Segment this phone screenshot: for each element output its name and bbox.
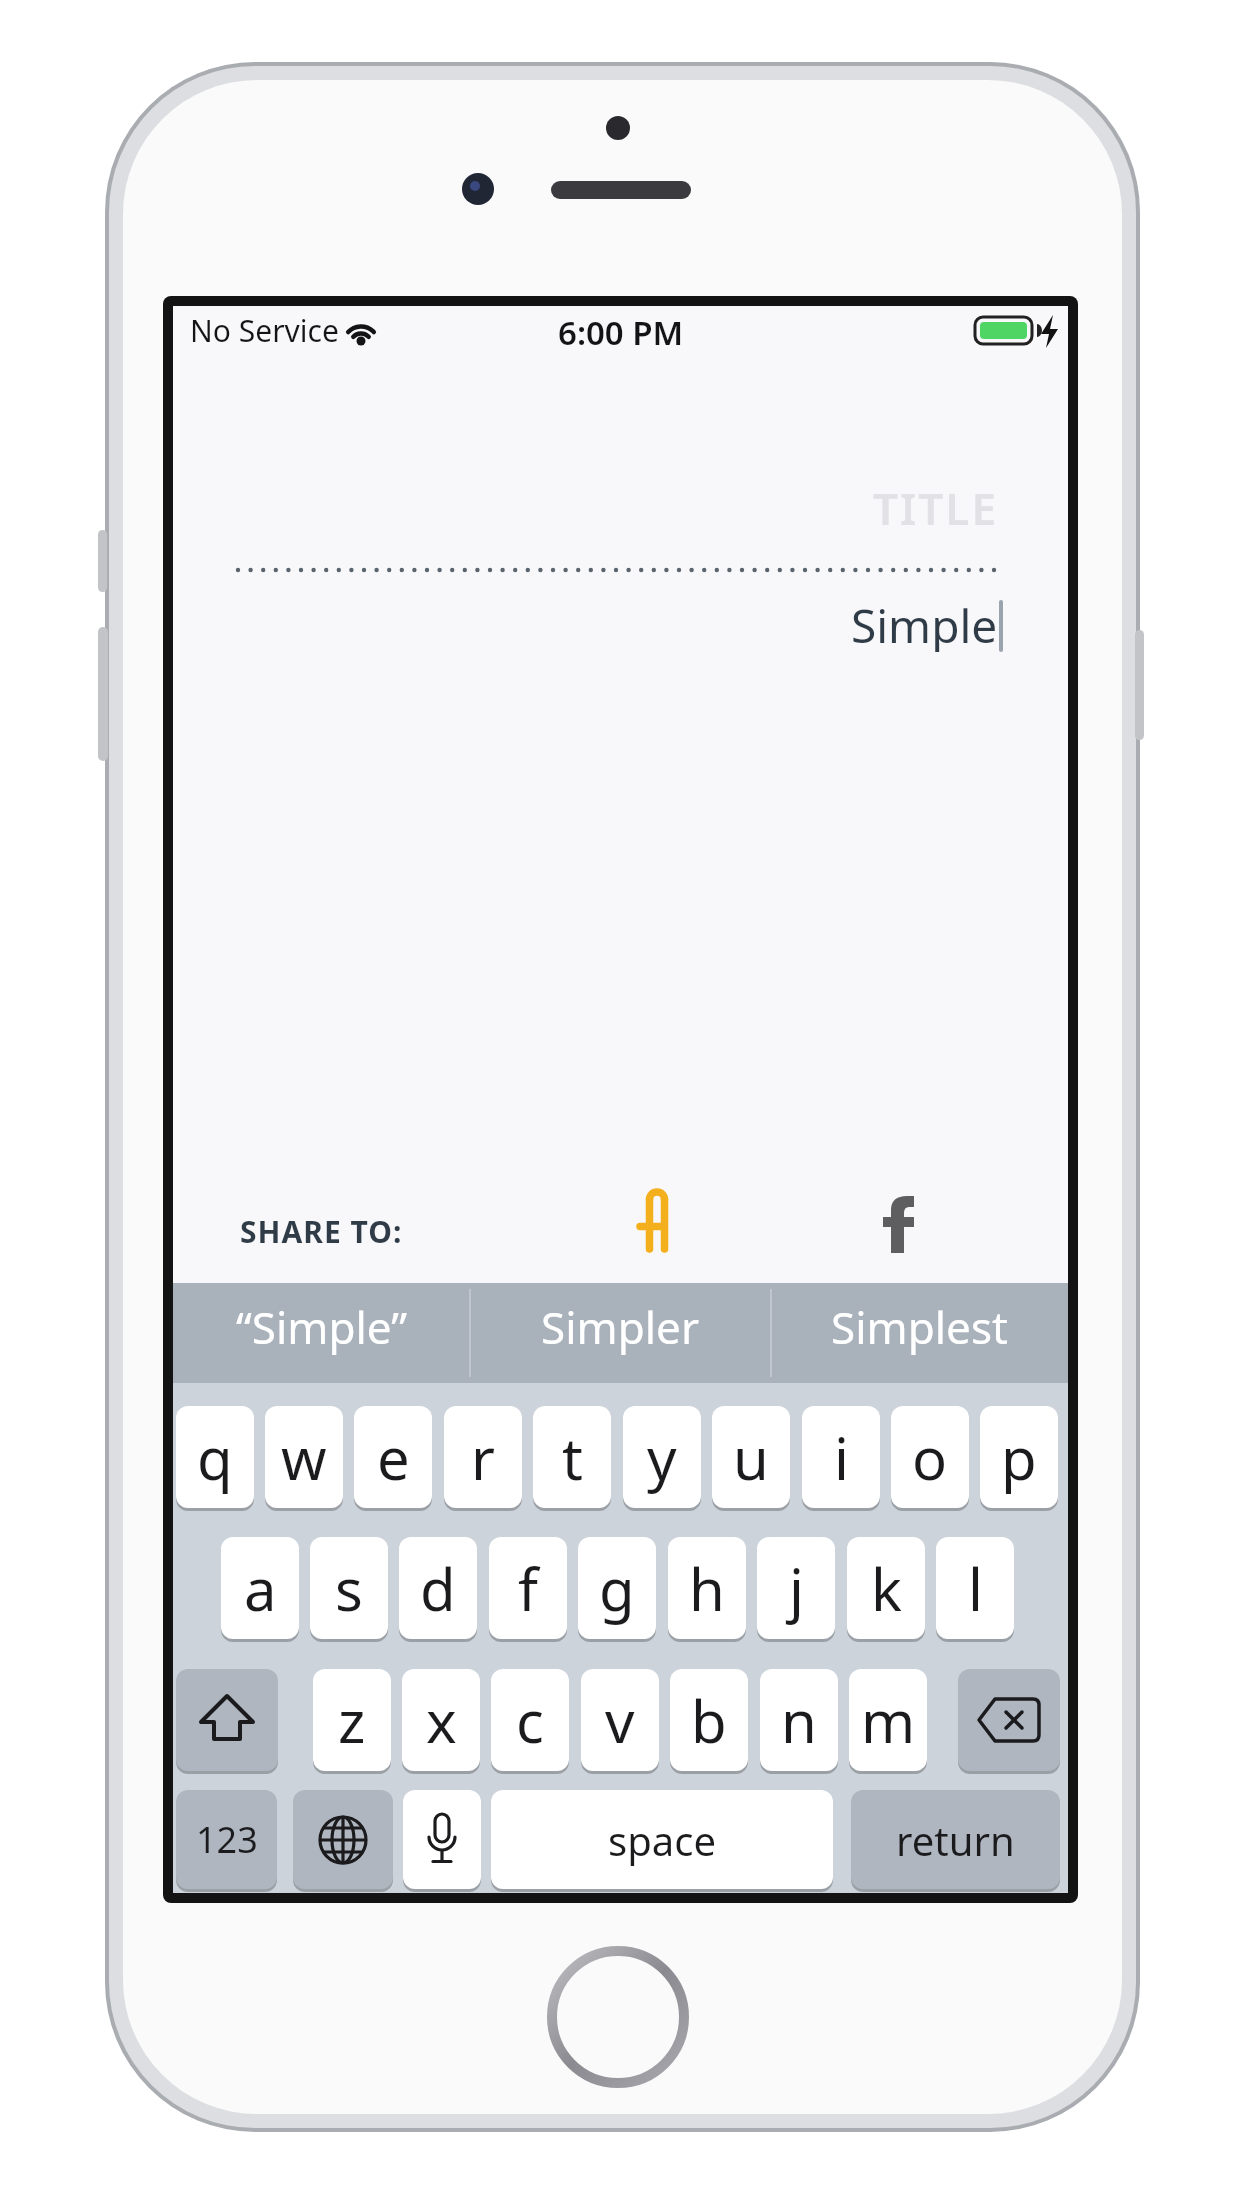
button[interactable]: m <box>849 1669 927 1771</box>
button[interactable]: k <box>847 1537 925 1639</box>
button[interactable]: e <box>354 1406 432 1508</box>
button[interactable]: 123 <box>176 1790 277 1889</box>
button[interactable] <box>176 1669 278 1771</box>
button[interactable]: p <box>980 1406 1058 1508</box>
button[interactable]: s <box>310 1537 388 1639</box>
button[interactable] <box>630 1182 690 1264</box>
staticText: p <box>1001 1418 1037 1497</box>
staticText: f <box>518 1549 538 1628</box>
staticText: d <box>420 1549 456 1628</box>
button[interactable]: o <box>891 1406 969 1508</box>
button[interactable]: b <box>670 1669 748 1771</box>
staticText: TITLE <box>873 478 998 532</box>
button[interactable]: l <box>936 1537 1014 1639</box>
button[interactable]: w <box>265 1406 343 1508</box>
staticText: Simple <box>851 594 998 652</box>
staticText: k <box>871 1549 902 1628</box>
button[interactable]: x <box>402 1669 480 1771</box>
staticText: z <box>338 1681 366 1760</box>
staticText: i <box>834 1418 849 1497</box>
button[interactable] <box>293 1790 393 1889</box>
staticText: q <box>197 1418 233 1497</box>
button[interactable]: y <box>623 1406 701 1508</box>
button[interactable]: j <box>757 1537 835 1639</box>
button[interactable]: h <box>668 1537 746 1639</box>
button[interactable]: q <box>176 1406 254 1508</box>
button[interactable]: a <box>221 1537 299 1639</box>
staticText: e <box>377 1418 410 1497</box>
button[interactable]: u <box>712 1406 790 1508</box>
button[interactable]: Simpler <box>470 1277 771 1377</box>
staticText: l <box>968 1549 983 1628</box>
staticText: 6:00 PM <box>558 310 684 350</box>
button[interactable]: c <box>491 1669 569 1771</box>
staticText: n <box>781 1681 817 1760</box>
staticText: “Simple” <box>236 1297 408 1357</box>
staticText: b <box>691 1681 727 1760</box>
staticText: y <box>647 1418 677 1497</box>
staticText: r <box>471 1418 495 1497</box>
staticText: a <box>244 1549 277 1628</box>
button[interactable]: f <box>489 1537 567 1639</box>
button[interactable]: t <box>533 1406 611 1508</box>
staticText: s <box>335 1549 363 1628</box>
button[interactable]: return <box>851 1790 1060 1889</box>
staticText: v <box>605 1681 635 1760</box>
button[interactable] <box>403 1790 481 1889</box>
staticText: 123 <box>196 1815 258 1864</box>
staticText: x <box>426 1681 457 1760</box>
button[interactable]: r <box>444 1406 522 1508</box>
button[interactable]: g <box>578 1537 656 1639</box>
button[interactable] <box>874 1186 922 1260</box>
button[interactable]: “Simple” <box>173 1277 470 1377</box>
staticText: o <box>912 1418 948 1497</box>
staticText: Simplest <box>831 1297 1008 1357</box>
staticText: t <box>562 1418 583 1497</box>
staticText: j <box>789 1549 804 1628</box>
button[interactable]: i <box>802 1406 880 1508</box>
staticText: space <box>608 1813 716 1867</box>
button[interactable] <box>958 1669 1060 1771</box>
staticText: m <box>861 1681 916 1760</box>
staticText: SHARE TO: <box>240 1211 403 1252</box>
staticText: h <box>689 1549 725 1628</box>
staticText: w <box>281 1418 327 1497</box>
staticText: u <box>733 1418 769 1497</box>
button[interactable]: v <box>581 1669 659 1771</box>
staticText: return <box>896 1813 1015 1867</box>
button[interactable]: z <box>313 1669 391 1771</box>
button[interactable]: Simplest <box>771 1277 1068 1377</box>
staticText: No Service <box>190 310 339 350</box>
staticText: g <box>599 1549 635 1628</box>
staticText: Simpler <box>541 1297 700 1357</box>
staticText: c <box>516 1681 544 1760</box>
button[interactable]: d <box>399 1537 477 1639</box>
button[interactable]: space <box>491 1790 833 1889</box>
button[interactable]: n <box>760 1669 838 1771</box>
